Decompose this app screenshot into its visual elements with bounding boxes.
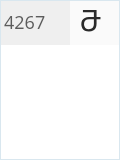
other: Character U+10AB xyxy=(70,1,119,45)
button[interactable]: 4267 xyxy=(1,1,119,45)
staticText: 4267 xyxy=(4,10,46,35)
